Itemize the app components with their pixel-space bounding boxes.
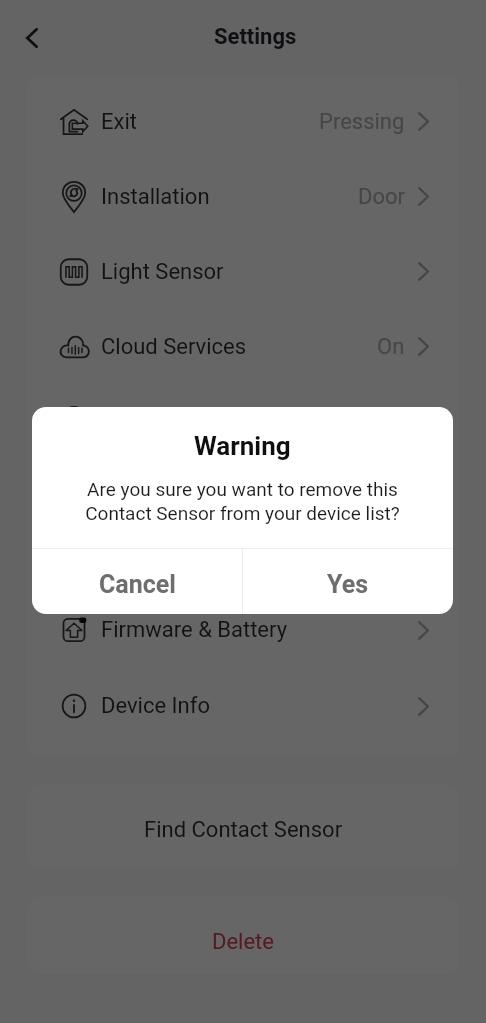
button[interactable]: Light Sensor: [27, 234, 459, 309]
staticText: Delete: [212, 929, 274, 955]
button[interactable]: Alerts: [27, 522, 459, 592]
staticText: Alerts: [101, 544, 159, 570]
staticText: Light Sensor: [101, 259, 224, 285]
staticText: Yes: [327, 570, 369, 599]
button[interactable]: Delete: [27, 897, 459, 974]
staticText: Exit: [101, 109, 137, 135]
button[interactable]: Cloud Services: [27, 309, 459, 384]
button[interactable]: Find Contact Sensor: [27, 785, 459, 869]
button[interactable]: Device Info: [27, 668, 459, 744]
button[interactable]: Cancel: [32, 549, 242, 614]
button[interactable]: Yes: [243, 549, 453, 614]
button[interactable]: Exit: [27, 84, 459, 159]
staticText: Find Contact Sensor: [144, 817, 343, 843]
button[interactable]: Firmware & Battery: [27, 592, 459, 668]
staticText: Firmware & Battery: [101, 617, 288, 643]
staticText: Warning: [194, 431, 291, 461]
staticText: Cancel: [99, 570, 176, 599]
button[interactable]: Back: [11, 17, 52, 58]
staticText: Automation: [101, 406, 216, 432]
staticText: On: [377, 334, 405, 360]
staticText: Device Info: [101, 693, 210, 719]
button[interactable]: Installation: [27, 159, 459, 234]
button[interactable]: Automation: [27, 384, 459, 453]
staticText: Door: [358, 184, 405, 210]
staticText: Device Sharing: [101, 475, 247, 501]
staticText: Cloud Services: [101, 334, 247, 360]
button[interactable]: Device Sharing: [27, 453, 459, 522]
staticText: Pressing: [319, 109, 405, 135]
staticText: Installation: [101, 184, 210, 210]
staticText: Settings: [214, 24, 297, 50]
staticText: Are you sure you want to remove this Con…: [85, 478, 400, 525]
